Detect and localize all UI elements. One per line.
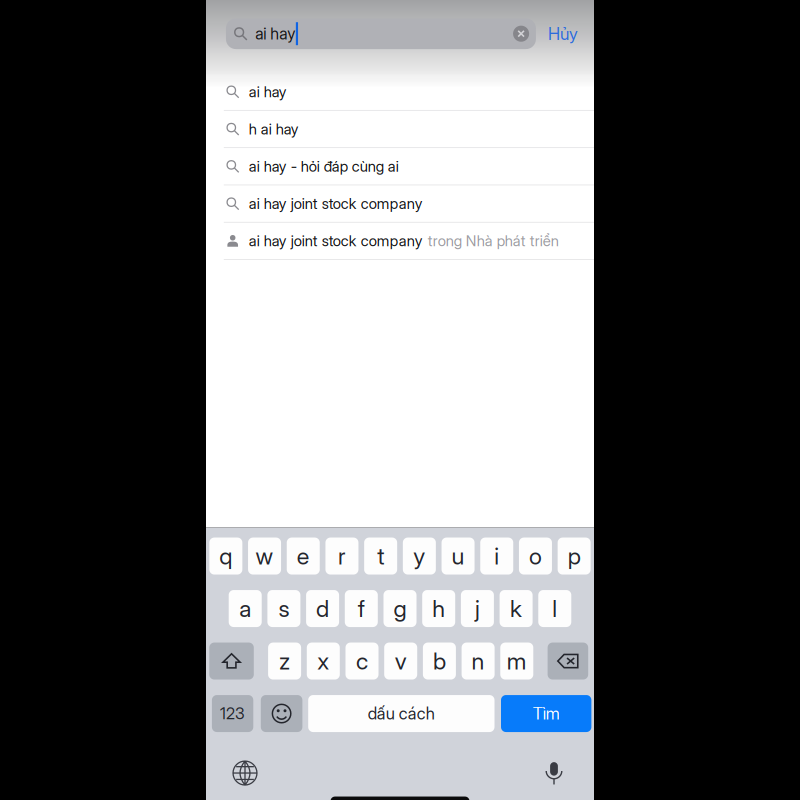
staticText: d — [316, 594, 329, 623]
staticText: k — [510, 594, 522, 623]
button[interactable]: y — [403, 537, 436, 574]
staticText: w — [256, 542, 274, 570]
button[interactable]: Delete — [548, 642, 588, 679]
button[interactable]: q — [209, 537, 242, 574]
staticText: trong Nhà phát triển — [428, 232, 559, 250]
button[interactable]: g — [383, 590, 416, 627]
staticText: i — [494, 542, 499, 570]
button[interactable]: b — [423, 642, 456, 679]
button[interactable]: p — [558, 537, 591, 574]
staticText: ai hay — [249, 83, 287, 101]
button[interactable]: u — [441, 537, 474, 574]
staticText: ai hay joint stock company — [249, 232, 423, 250]
staticText: u — [451, 542, 464, 570]
staticText: z — [279, 647, 290, 675]
button[interactable]: h — [422, 590, 455, 627]
staticText: b — [433, 647, 446, 675]
button[interactable]: z — [268, 642, 301, 679]
button[interactable]: r — [325, 537, 358, 574]
button[interactable]: 123 — [212, 695, 253, 732]
button[interactable]: a — [229, 590, 262, 627]
staticText: e — [297, 542, 310, 570]
staticText: f — [358, 594, 365, 623]
staticText: m — [507, 647, 527, 675]
button[interactable]: Next keyboard — [226, 757, 264, 789]
button[interactable]: ai hay joint stock company — [206, 223, 594, 260]
staticText: dấu cách — [368, 703, 435, 724]
staticText: h — [432, 594, 445, 623]
button[interactable]: x — [307, 642, 340, 679]
staticText: j — [475, 594, 480, 623]
button[interactable]: i — [480, 537, 513, 574]
button[interactable]: l — [538, 590, 571, 627]
button[interactable]: o — [519, 537, 552, 574]
staticText: s — [278, 594, 289, 623]
button[interactable]: s — [267, 590, 300, 627]
button[interactable]: dấu cách — [308, 695, 494, 732]
button[interactable]: v — [384, 642, 417, 679]
staticText: t — [377, 542, 384, 570]
button[interactable]: d — [306, 590, 339, 627]
staticText: 123 — [220, 704, 245, 723]
button[interactable]: ai hay - hỏi đáp cùng ai — [206, 148, 594, 185]
button[interactable]: Tìm — [501, 695, 591, 732]
button[interactable]: ai hay joint stock company — [206, 185, 594, 223]
staticText: h ai hay — [249, 120, 299, 138]
button[interactable]: h ai hay — [206, 111, 594, 148]
staticText: p — [568, 542, 581, 570]
button[interactable]: Shift — [209, 642, 254, 679]
button[interactable]: f — [345, 590, 378, 627]
staticText: Tìm — [533, 703, 560, 724]
button[interactable]: j — [461, 590, 494, 627]
staticText: v — [395, 647, 407, 675]
staticText: g — [393, 594, 406, 623]
button[interactable]: Emoji — [261, 695, 302, 732]
staticText: n — [472, 647, 485, 675]
button[interactable]: w — [248, 537, 281, 574]
staticText: ai hay joint stock company — [249, 195, 423, 213]
button[interactable]: k — [500, 590, 533, 627]
staticText: a — [239, 594, 251, 623]
staticText: y — [413, 542, 425, 570]
staticText: q — [219, 542, 232, 570]
staticText: x — [317, 647, 329, 675]
staticText: ai hay - hỏi đáp cùng ai — [249, 157, 399, 175]
button[interactable]: t — [364, 537, 397, 574]
staticText: c — [356, 647, 368, 675]
staticText: l — [552, 594, 557, 623]
button[interactable]: n — [462, 642, 495, 679]
button[interactable]: m — [500, 642, 533, 679]
button[interactable]: c — [345, 642, 378, 679]
staticText: Hủy — [548, 23, 578, 44]
staticText: o — [529, 542, 542, 570]
button[interactable]: Dictation — [535, 757, 573, 789]
staticText: r — [338, 542, 346, 570]
button[interactable]: e — [287, 537, 320, 574]
staticText: ai hay — [255, 24, 295, 43]
button[interactable]: Hủy — [536, 17, 590, 51]
button[interactable]: ai hay — [206, 73, 594, 111]
